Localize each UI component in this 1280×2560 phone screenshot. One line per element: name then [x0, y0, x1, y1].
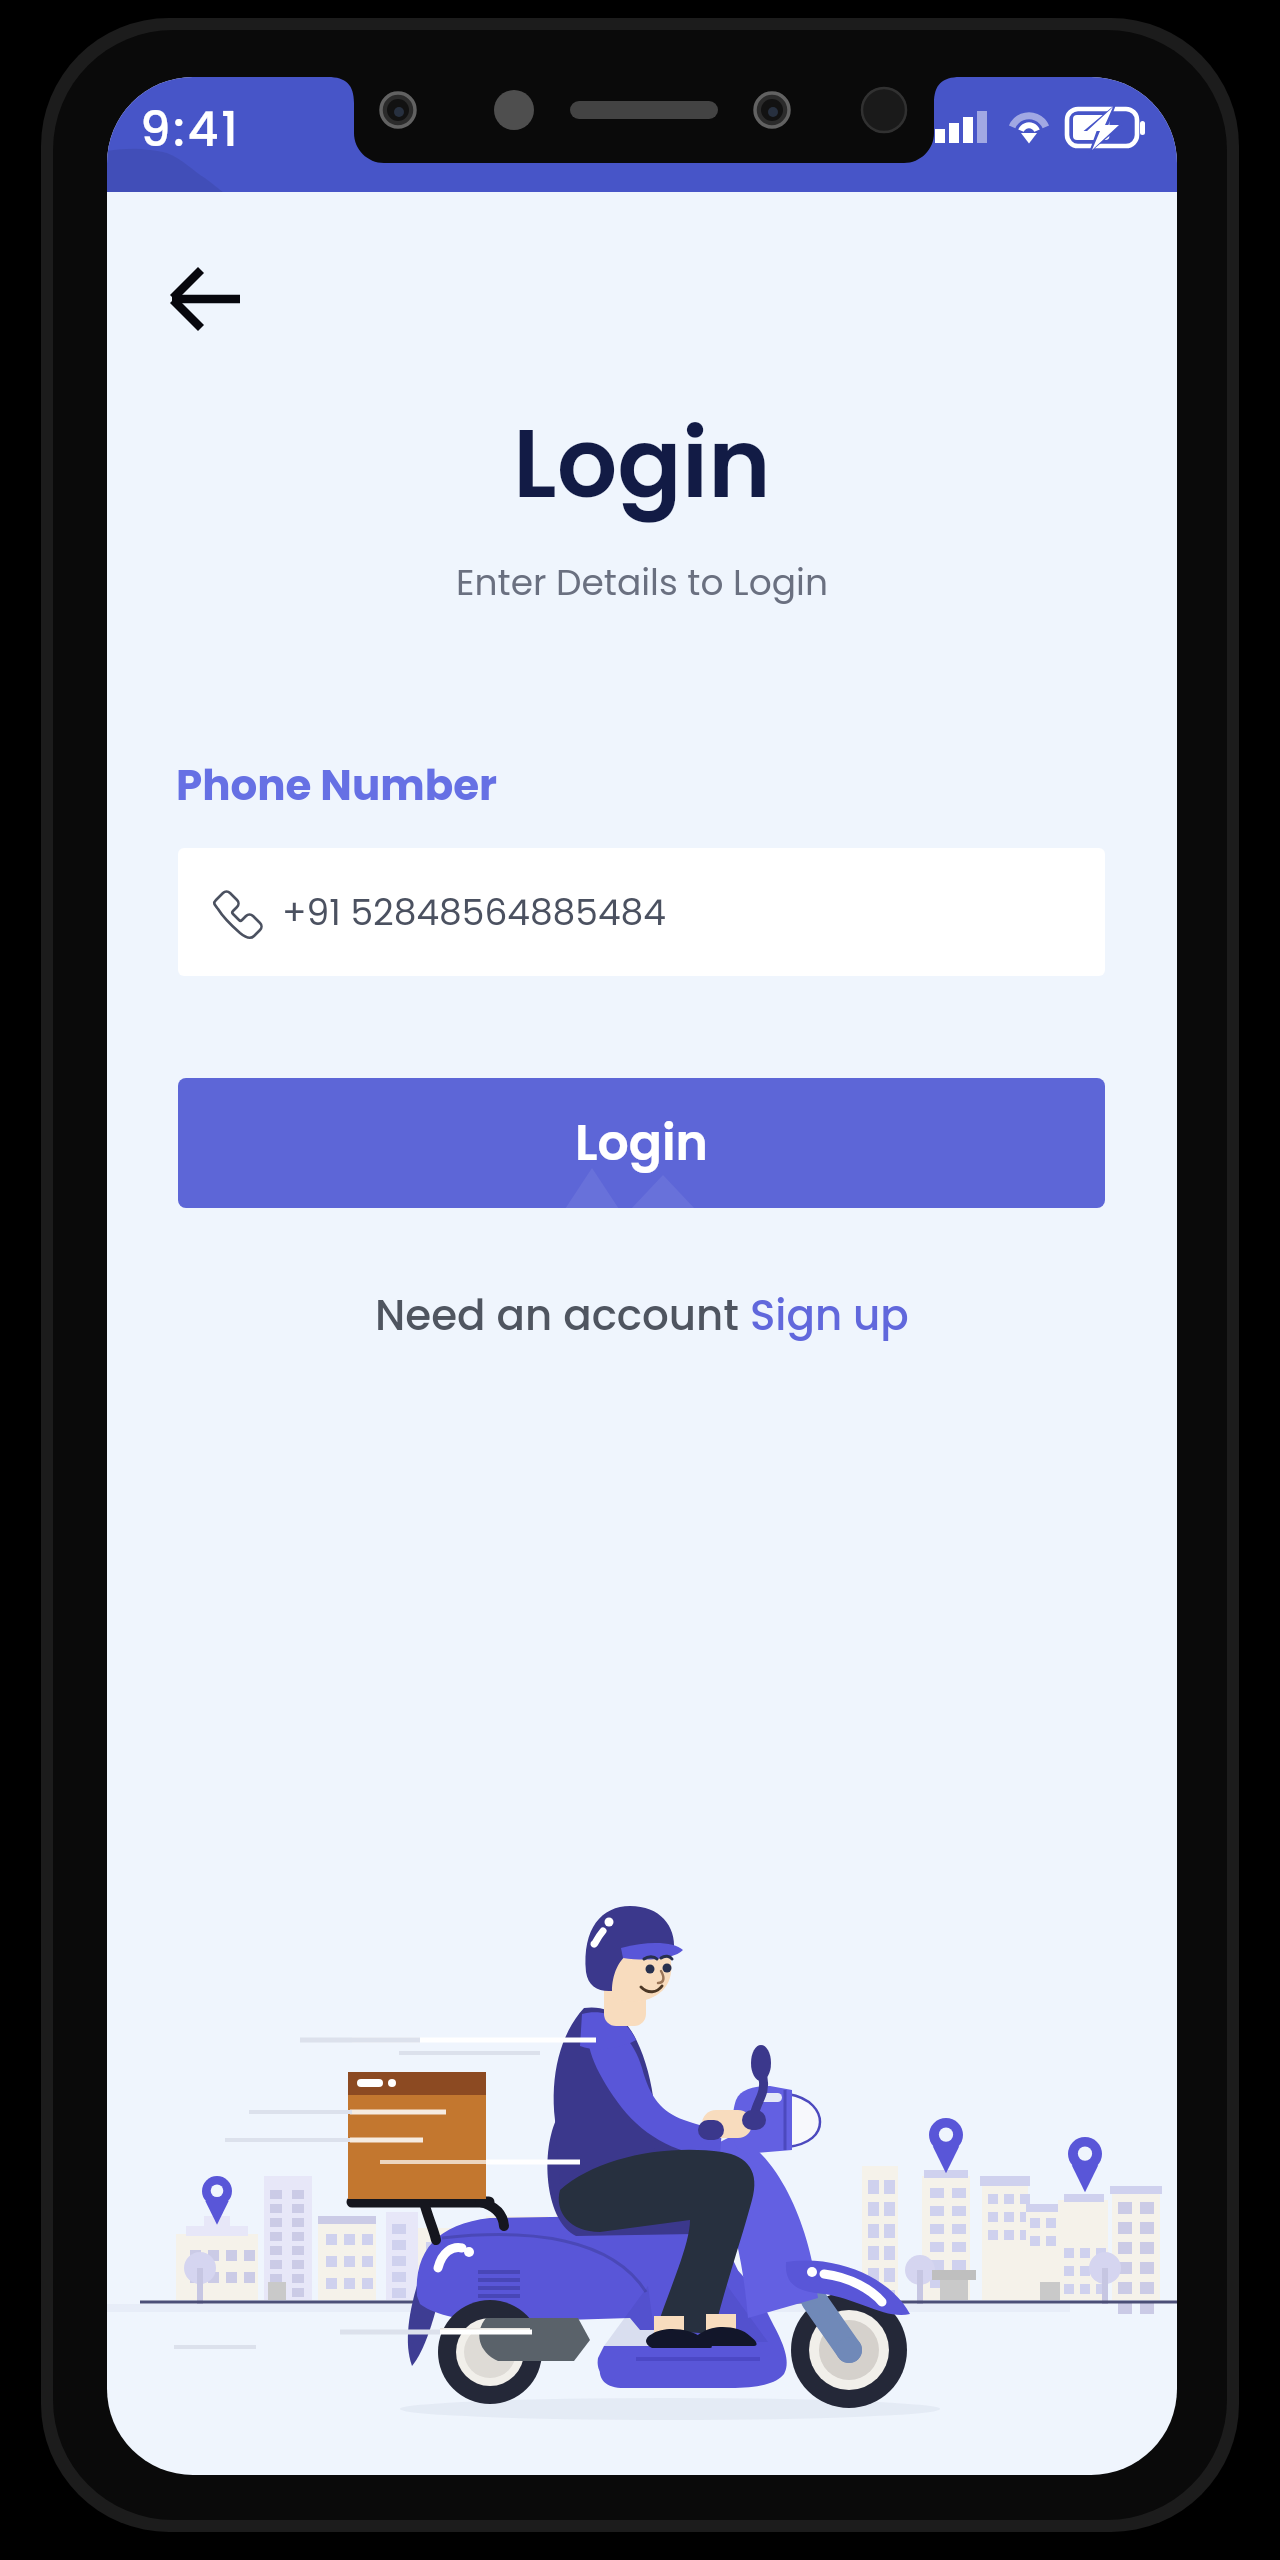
- button[interactable]: Back: [148, 236, 278, 362]
- staticText: Enter Details to Login: [107, 557, 1177, 607]
- staticText: Login: [575, 1109, 708, 1178]
- staticText: +91 52848564885484: [282, 887, 666, 937]
- staticText: Need an account: [375, 1286, 750, 1345]
- button[interactable]: Sign up: [750, 1286, 909, 1345]
- staticText: Login: [107, 397, 1177, 530]
- staticText: 9:41: [140, 96, 241, 163]
- button[interactable]: +91 52848564885484: [178, 848, 1105, 976]
- staticText: Phone Number: [176, 756, 498, 815]
- button[interactable]: Login: [178, 1078, 1105, 1208]
